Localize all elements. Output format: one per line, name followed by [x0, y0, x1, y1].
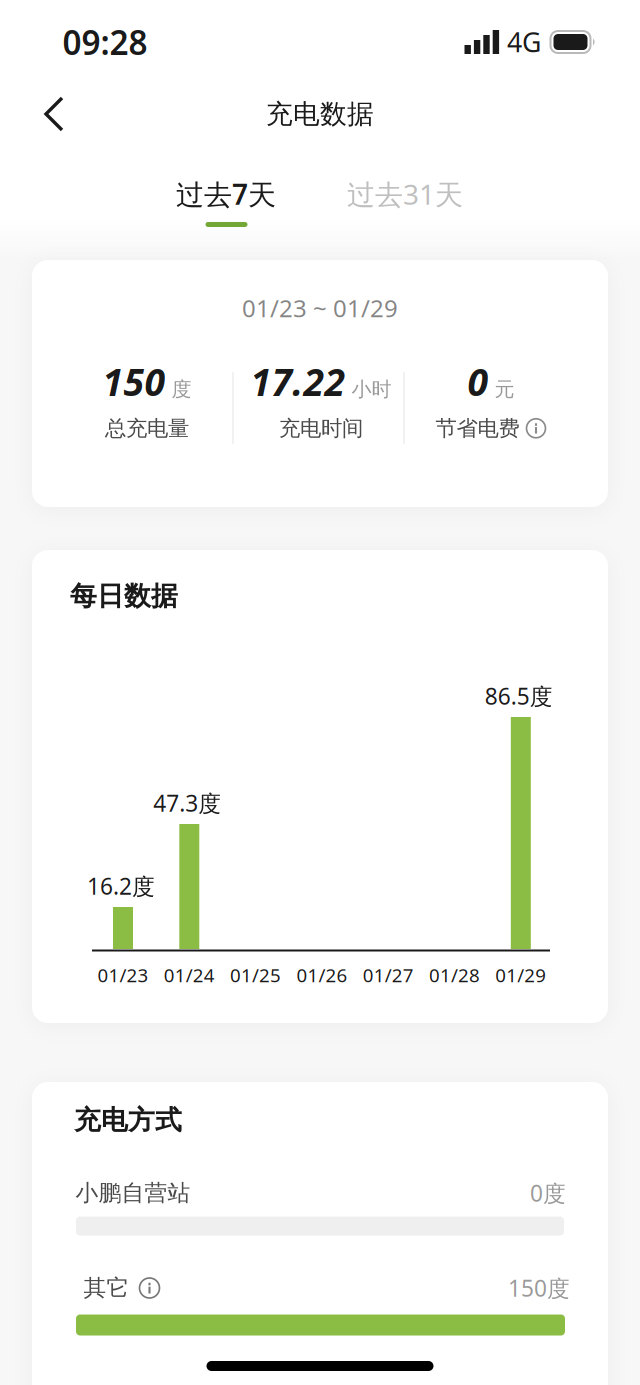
staticText: 0: [467, 357, 488, 406]
staticText: 过去7天: [176, 175, 276, 213]
staticText: 09:28: [62, 20, 147, 64]
staticText: 01/27: [363, 963, 414, 987]
staticText: 01/24: [164, 963, 215, 987]
staticText: 总充电量: [105, 415, 189, 441]
staticText: 01/23: [97, 963, 148, 987]
staticText: 度: [171, 377, 191, 401]
staticText: 150: [102, 357, 165, 406]
staticText: 充电时间: [279, 415, 363, 441]
staticText: 0度: [530, 1178, 566, 1208]
staticText: 150度: [508, 1273, 570, 1303]
button[interactable]: [138, 1277, 160, 1299]
staticText: 01/29: [495, 963, 546, 987]
staticText: 01/25: [230, 963, 281, 987]
button[interactable]: 过去31天: [330, 172, 480, 216]
staticText: 元: [494, 377, 514, 401]
button[interactable]: 过去7天: [156, 172, 296, 216]
staticText: 4G: [507, 24, 541, 60]
staticText: 充电数据: [266, 98, 374, 130]
staticText: 01/28: [429, 963, 480, 987]
staticText: 其它: [83, 1274, 129, 1302]
button[interactable]: [525, 418, 546, 439]
staticText: 节省电费: [435, 415, 519, 441]
staticText: 充电方式: [74, 1104, 182, 1136]
staticText: 每日数据: [70, 580, 178, 612]
staticText: 小时: [351, 377, 391, 401]
staticText: 过去31天: [347, 175, 463, 213]
staticText: 47.3度: [153, 788, 221, 818]
staticText: 17.22: [250, 357, 345, 406]
staticText: 小鹏自营站: [75, 1179, 190, 1207]
button[interactable]: [28, 87, 80, 141]
staticText: 86.5度: [485, 681, 553, 711]
staticText: 16.2度: [87, 871, 155, 901]
staticText: 01/23 ~ 01/29: [242, 292, 398, 324]
staticText: 01/26: [296, 963, 347, 987]
